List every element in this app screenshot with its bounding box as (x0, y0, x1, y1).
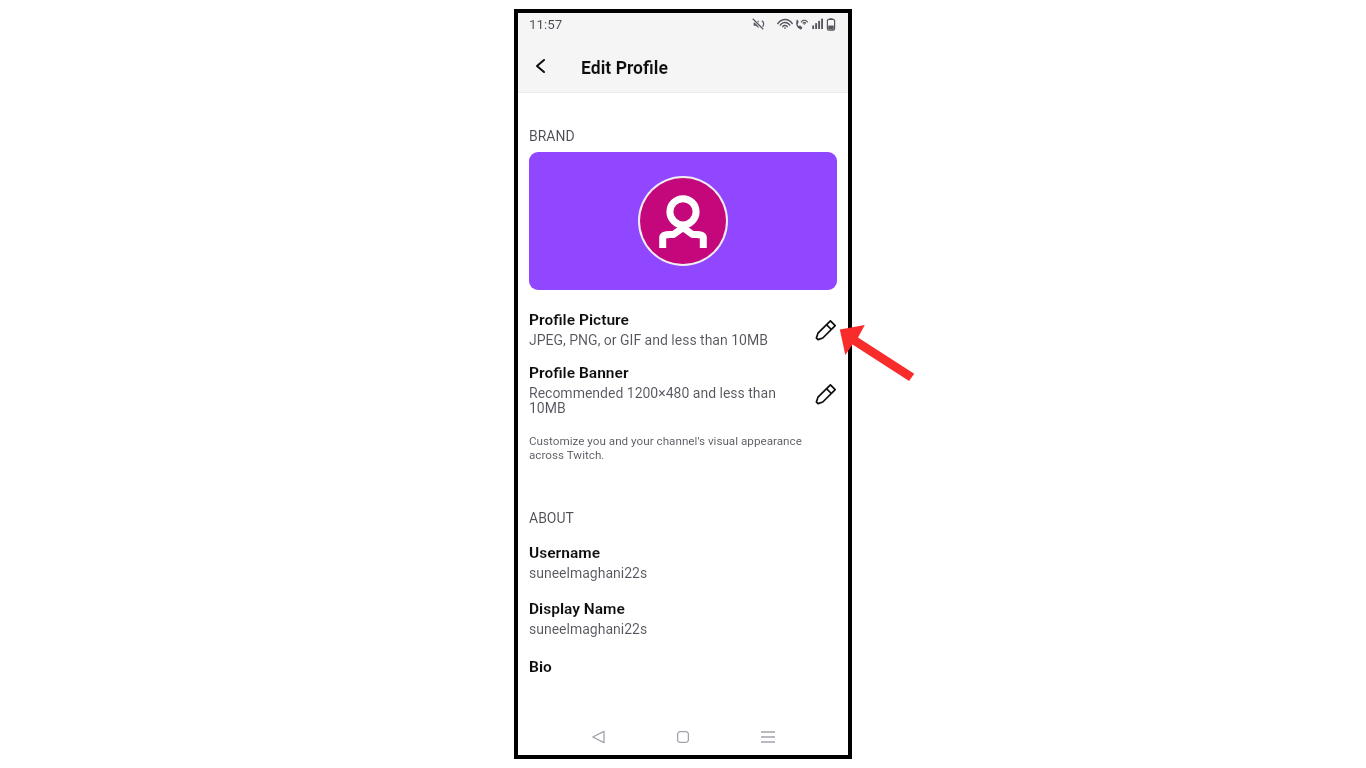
button[interactable]: Edit (806, 380, 838, 412)
staticText: Recommended 1200×480 and less than 10MB (529, 385, 776, 417)
staticText: ABOUT (529, 510, 574, 526)
staticText: JPEG, PNG, or GIF and less than 10MB (529, 332, 768, 348)
button[interactable]: Profile Banner (518, 358, 848, 424)
staticText: Edit Profile (581, 58, 668, 79)
staticText: 11:57 (529, 17, 563, 33)
button[interactable]: Recent apps (748, 717, 788, 755)
staticText: Username (529, 544, 601, 562)
staticText: Profile Picture (529, 311, 629, 329)
button[interactable]: Home (663, 717, 703, 755)
button[interactable]: Bio (518, 654, 848, 680)
button[interactable] (529, 152, 837, 290)
button[interactable]: Profile Picture (518, 305, 848, 355)
button[interactable]: Back (578, 717, 618, 755)
button[interactable]: Username (518, 544, 848, 581)
staticText: Profile Banner (529, 364, 629, 382)
staticText: Bio (529, 658, 552, 676)
button[interactable]: Edit (806, 316, 838, 348)
staticText: BRAND (529, 128, 575, 144)
staticText: Display Name (529, 600, 625, 618)
button[interactable]: Back (519, 45, 561, 87)
staticText: suneelmaghani22s (529, 565, 648, 581)
staticText: Customize you and your channel's visual … (529, 434, 802, 462)
staticText: suneelmaghani22s (529, 621, 648, 637)
button[interactable]: Display Name (518, 600, 848, 637)
